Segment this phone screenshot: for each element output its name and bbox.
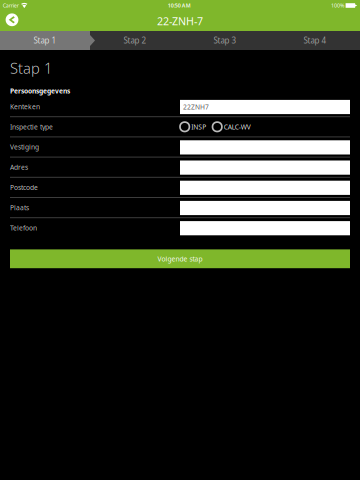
button[interactable]: Text field <box>180 180 350 194</box>
button[interactable]: Text field <box>180 200 350 215</box>
staticText: CALC-WV <box>224 122 251 131</box>
button[interactable]: INSP <box>180 117 206 136</box>
button[interactable]: Stap 2 <box>90 31 180 50</box>
staticText: Kenteken <box>10 102 40 111</box>
staticText: Postcode <box>10 183 38 192</box>
button[interactable]: Volgende stap <box>10 249 350 268</box>
button[interactable]: Stap 1 <box>0 31 90 50</box>
staticText: Vestiging <box>10 143 39 151</box>
staticText: Telefoon <box>10 223 37 232</box>
staticText: Stap 4 <box>303 35 326 46</box>
staticText: Adres <box>10 163 28 172</box>
staticText: Stap 1 <box>10 58 52 78</box>
staticText: Stap 1 <box>33 35 56 46</box>
staticText: 10:50 AM <box>168 2 191 9</box>
staticText: Stap 3 <box>213 35 236 46</box>
button[interactable]: 22ZNH7 <box>180 99 350 114</box>
staticText: 22ZNH7 <box>183 103 209 111</box>
button[interactable]: Text field <box>180 221 350 235</box>
staticText: INSP <box>191 122 206 131</box>
staticText: Volgende stap <box>157 254 202 263</box>
staticText: Carrier <box>3 2 19 9</box>
button[interactable]: Stap 4 <box>270 31 360 50</box>
button[interactable]: Text field <box>180 160 350 174</box>
staticText: 100% <box>331 2 344 9</box>
button[interactable]: CALC-WV <box>212 117 251 136</box>
staticText: Stap 2 <box>123 35 146 46</box>
staticText: Plaats <box>10 203 29 212</box>
staticText: Inspectie type <box>10 122 53 131</box>
button[interactable]: Back <box>0 11 30 31</box>
staticText: Persoonsgegevens <box>10 87 70 95</box>
button[interactable]: Stap 3 <box>180 31 270 50</box>
button[interactable]: Text field <box>180 140 350 154</box>
staticText: 22-ZNH-7 <box>157 14 203 28</box>
